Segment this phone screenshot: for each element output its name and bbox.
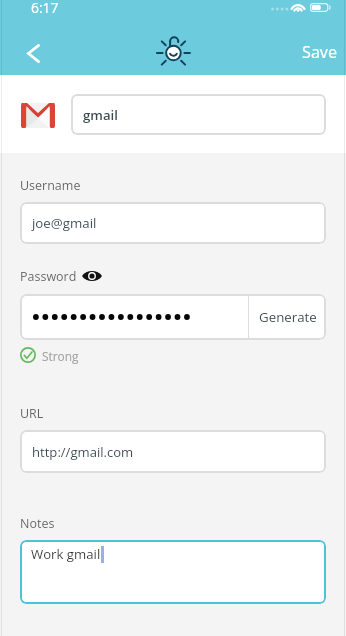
staticText: Username xyxy=(20,177,81,194)
staticText: URL xyxy=(20,405,44,422)
button[interactable]: Work gmail xyxy=(20,540,326,604)
staticText: http://gmail.com xyxy=(32,443,134,461)
staticText: Password xyxy=(20,268,77,285)
staticText: Work gmail xyxy=(31,545,101,563)
button[interactable]: http://gmail.com xyxy=(20,430,326,473)
staticText: Strong xyxy=(42,348,79,364)
button[interactable]: Save xyxy=(295,36,344,68)
button[interactable]: joe@gmail xyxy=(20,202,326,244)
staticText: Notes xyxy=(20,515,55,532)
other: App logo xyxy=(155,33,192,65)
staticText: gmail xyxy=(83,106,118,124)
button[interactable]: Generate xyxy=(249,294,326,340)
button[interactable] xyxy=(20,294,248,340)
staticText: Save xyxy=(302,41,338,63)
staticText: Generate xyxy=(259,308,317,326)
staticText: joe@gmail xyxy=(32,214,97,232)
button[interactable]: gmail xyxy=(71,94,326,135)
button[interactable]: Show password xyxy=(82,270,102,282)
button[interactable]: Back xyxy=(11,31,55,75)
staticText: 6:17 xyxy=(31,0,59,17)
